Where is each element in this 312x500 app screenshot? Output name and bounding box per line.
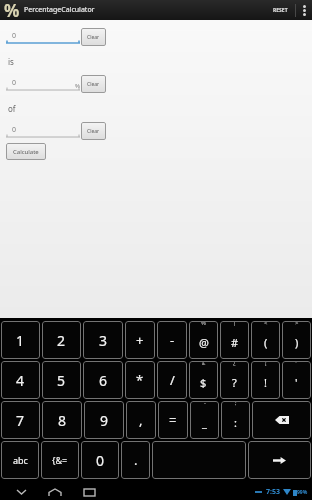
staticText: Calculate bbox=[13, 148, 39, 156]
staticText: # bbox=[231, 335, 239, 350]
button[interactable]: Clear bbox=[81, 28, 106, 46]
button[interactable]: abc bbox=[1, 441, 39, 479]
button[interactable]: " bbox=[282, 361, 311, 399]
staticText: , bbox=[139, 411, 143, 429]
staticText: + bbox=[136, 331, 144, 349]
staticText: Clear bbox=[87, 34, 100, 41]
button[interactable]: 0 bbox=[6, 28, 80, 46]
button[interactable]: = bbox=[158, 401, 188, 439]
staticText: ! bbox=[264, 375, 267, 390]
staticText: PercentageCalculator bbox=[24, 5, 95, 15]
staticText: ' bbox=[295, 375, 298, 390]
staticText: @ bbox=[199, 335, 209, 350]
staticText: - bbox=[170, 331, 175, 349]
button[interactable]: More options bbox=[296, 0, 312, 20]
staticText: ) bbox=[295, 335, 299, 350]
staticText: £ bbox=[202, 361, 206, 367]
staticText: . bbox=[134, 451, 138, 469]
button[interactable]: 6 bbox=[83, 361, 123, 399]
staticText: {&= bbox=[52, 454, 68, 466]
staticText: 0 bbox=[96, 451, 105, 470]
button[interactable]: 1 bbox=[1, 321, 40, 359]
button[interactable]: Calculate bbox=[6, 143, 46, 160]
staticText: _ bbox=[202, 415, 207, 430]
staticText: - bbox=[204, 401, 206, 407]
staticText: < bbox=[264, 321, 268, 327]
staticText: | bbox=[233, 321, 237, 327]
button[interactable]: Clear bbox=[81, 75, 106, 93]
staticText: 5 bbox=[57, 371, 66, 390]
staticText: = bbox=[169, 411, 177, 429]
button[interactable]: 0 bbox=[6, 122, 80, 140]
staticText: abc bbox=[13, 454, 28, 466]
staticText: 0 bbox=[12, 125, 17, 135]
button[interactable]: 3 bbox=[83, 321, 123, 359]
staticText: 6 bbox=[99, 371, 108, 390]
button[interactable]: - bbox=[190, 401, 219, 439]
button[interactable]: 7 bbox=[1, 401, 40, 439]
button[interactable]: / bbox=[157, 361, 187, 399]
staticText: ? bbox=[232, 375, 237, 390]
button[interactable]: 8 bbox=[42, 401, 82, 439]
button[interactable]: Delete bbox=[252, 401, 311, 439]
staticText: 7 bbox=[16, 411, 25, 430]
staticText: RESET bbox=[273, 7, 288, 14]
staticText: / bbox=[170, 371, 175, 389]
button[interactable]: + bbox=[125, 321, 155, 359]
staticText: ¿ bbox=[233, 361, 236, 367]
button[interactable]: Space bbox=[152, 441, 246, 479]
staticText: 1 bbox=[16, 331, 25, 350]
button[interactable]: Hide keyboard bbox=[10, 484, 32, 500]
button[interactable]: 9 bbox=[84, 401, 124, 439]
staticText: is bbox=[8, 56, 14, 67]
button[interactable]: ; bbox=[221, 401, 250, 439]
button[interactable]: , bbox=[126, 401, 156, 439]
staticText: " bbox=[295, 361, 298, 367]
staticText: ¡ bbox=[265, 361, 267, 367]
button[interactable]: > bbox=[282, 321, 311, 359]
staticText: ( bbox=[264, 335, 268, 350]
button[interactable]: {&= bbox=[41, 441, 79, 479]
staticText: 0 bbox=[12, 78, 17, 88]
button[interactable]: Enter bbox=[248, 441, 311, 479]
button[interactable]: 5 bbox=[42, 361, 81, 399]
staticText: % bbox=[4, 0, 20, 19]
staticText: * bbox=[136, 371, 144, 389]
staticText: Clear bbox=[87, 128, 100, 135]
button[interactable]: RESET bbox=[273, 0, 288, 20]
button[interactable]: 2 bbox=[42, 321, 81, 359]
staticText: % bbox=[75, 82, 80, 90]
button[interactable]: < bbox=[251, 321, 280, 359]
button[interactable]: 0 bbox=[81, 441, 119, 479]
staticText: 8 bbox=[58, 411, 67, 430]
staticText: ; bbox=[235, 401, 237, 407]
button[interactable]: Clear bbox=[81, 122, 106, 140]
staticText: 4 bbox=[16, 371, 25, 390]
staticText: 7:53 bbox=[266, 487, 280, 497]
staticText: 2 bbox=[57, 331, 66, 350]
button[interactable]: 4 bbox=[1, 361, 40, 399]
button[interactable]: ¿ bbox=[220, 361, 249, 399]
staticText: Clear bbox=[87, 81, 100, 88]
staticText: of bbox=[8, 103, 16, 114]
button[interactable]: | bbox=[220, 321, 249, 359]
button[interactable]: 0 bbox=[6, 75, 80, 93]
staticText: 9 bbox=[100, 411, 109, 430]
staticText: : bbox=[234, 415, 237, 430]
button[interactable]: ¡ bbox=[251, 361, 280, 399]
button[interactable]: % bbox=[189, 321, 218, 359]
staticText: 99% bbox=[297, 489, 308, 496]
staticText: % bbox=[201, 321, 206, 327]
button[interactable]: £ bbox=[189, 361, 218, 399]
button[interactable]: . bbox=[121, 441, 150, 479]
button[interactable]: - bbox=[157, 321, 187, 359]
staticText: > bbox=[295, 321, 299, 327]
button[interactable]: Recent apps bbox=[78, 484, 100, 500]
button[interactable]: Home bbox=[44, 484, 66, 500]
staticText: $ bbox=[200, 375, 207, 390]
button[interactable]: * bbox=[125, 361, 155, 399]
staticText: 0 bbox=[12, 31, 17, 41]
staticText: 3 bbox=[99, 331, 108, 350]
